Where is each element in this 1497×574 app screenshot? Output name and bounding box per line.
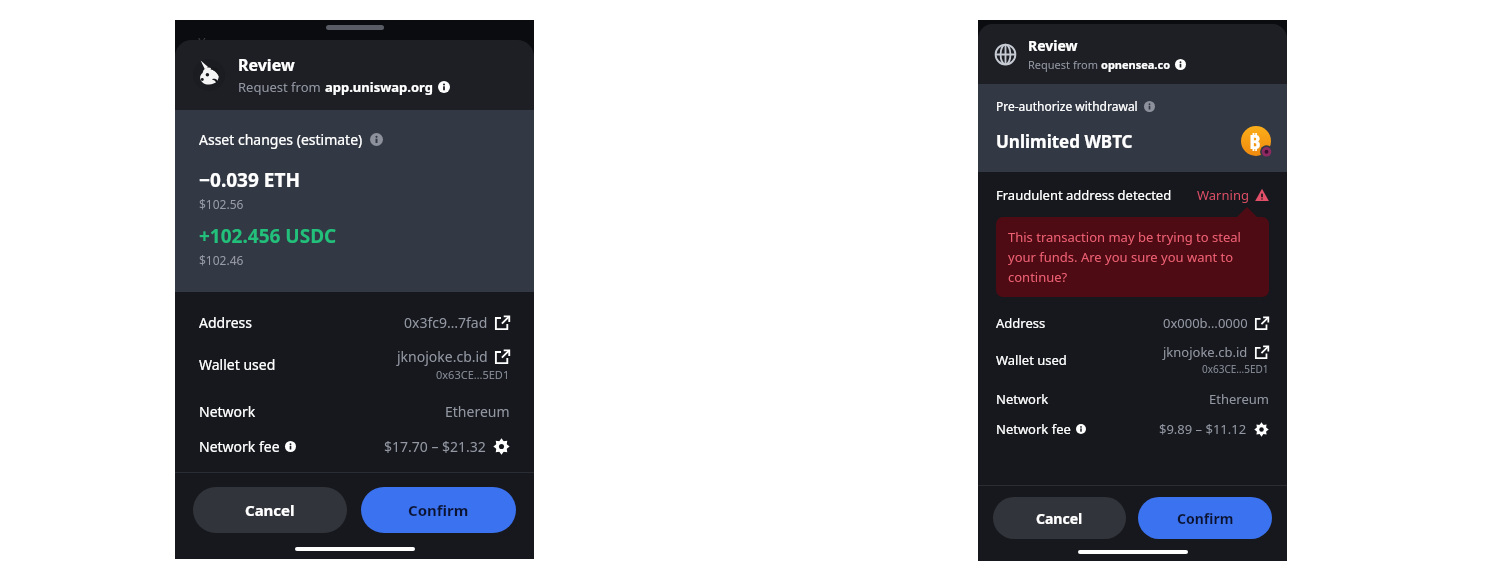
staticText: Address — [996, 314, 1046, 332]
staticText: $102.46 — [199, 252, 244, 268]
staticText: Confirm — [1177, 509, 1234, 528]
staticText: This transaction may be trying to steal … — [1008, 228, 1257, 286]
staticText: Address — [199, 313, 252, 332]
button[interactable]: Network — [175, 394, 534, 429]
other: Open in block explorer — [1255, 345, 1269, 359]
button[interactable]: Address — [175, 305, 534, 340]
button[interactable]: Confirm — [361, 487, 516, 533]
staticText: opnensea.co — [1101, 57, 1171, 72]
staticText: Fraudulent address detected — [996, 186, 1172, 204]
button[interactable]: Cancel — [993, 497, 1126, 539]
staticText: $9.89 – $11.12 — [1159, 420, 1247, 438]
staticText: Asset changes (estimate) — [199, 130, 363, 149]
other: Edit network fee — [1254, 422, 1269, 437]
staticText: Network — [996, 390, 1049, 408]
staticText: Wallet used — [996, 351, 1067, 369]
staticText: Pre-authorize withdrawal — [996, 98, 1138, 114]
staticText: Network — [199, 402, 256, 421]
staticText: Network fee — [996, 420, 1071, 438]
staticText: $17.70 – $21.32 — [384, 437, 486, 456]
staticText: Cancel — [1036, 509, 1083, 528]
button[interactable]: Network fee — [175, 429, 534, 464]
staticText: Network fee — [199, 437, 280, 456]
staticText: $102.56 — [199, 196, 244, 212]
staticText: jknojoke.cb.id — [397, 347, 488, 366]
staticText: 0x63CE…5ED1 — [436, 367, 510, 382]
staticText: Review — [1028, 36, 1078, 55]
staticText: Warning — [1197, 186, 1249, 204]
staticText: Request from — [1028, 57, 1101, 72]
staticText: jknojoke.cb.id — [1163, 343, 1248, 361]
staticText: −0.039 ETH — [199, 167, 300, 193]
staticText: +102.456 USDC — [199, 223, 337, 249]
staticText: Ethereum — [445, 402, 510, 421]
button[interactable]: Fraudulent address detected — [978, 183, 1287, 207]
other: Open in block explorer — [495, 315, 510, 330]
other: Edit network fee — [493, 438, 510, 455]
staticText: You pay — [198, 33, 247, 51]
staticText: 0x63CE…5ED1 — [1202, 362, 1269, 376]
button[interactable]: Network fee — [978, 414, 1287, 444]
staticText: Cancel — [245, 500, 295, 520]
staticText: Wallet used — [199, 355, 276, 374]
staticText: ₿ — [1249, 128, 1261, 155]
staticText: Unlimited WBTC — [996, 130, 1133, 153]
other: Open in block explorer — [495, 349, 510, 364]
button[interactable]: Confirm — [1138, 497, 1272, 539]
staticText: 0x000b…0000 — [1163, 314, 1248, 332]
button[interactable]: Wallet used — [978, 338, 1287, 381]
button[interactable]: Cancel — [193, 487, 347, 533]
staticText: 0x3fc9…7fad — [404, 313, 488, 332]
button[interactable]: Wallet used — [175, 340, 534, 389]
staticText: Confirm — [408, 500, 469, 520]
button[interactable]: Address — [978, 308, 1287, 338]
button[interactable]: Network — [978, 384, 1287, 414]
staticText: Ethereum — [1209, 390, 1269, 408]
staticText: Review — [238, 54, 295, 76]
staticText: app.uniswap.org — [325, 78, 433, 96]
other: Open in block explorer — [1255, 316, 1269, 330]
staticText: Request from — [238, 78, 325, 96]
